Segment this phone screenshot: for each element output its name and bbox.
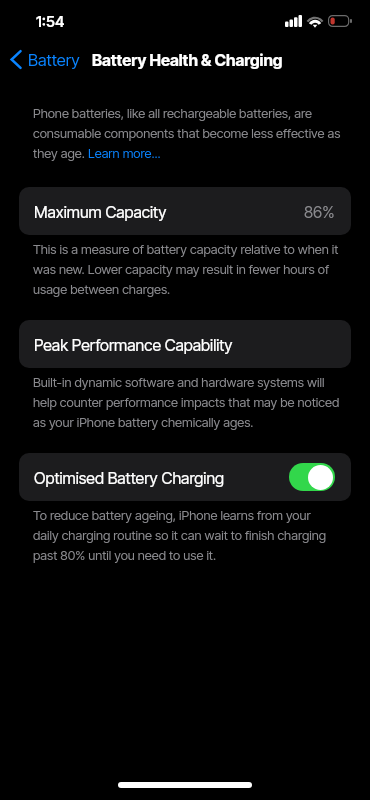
staticText: they age. xyxy=(33,142,88,162)
staticText: Maximum Capacity xyxy=(34,202,167,221)
staticText: Peak Performance Capability xyxy=(34,335,233,354)
staticText: 1:54 xyxy=(36,12,65,30)
button[interactable]: Maximum Capacity xyxy=(19,187,351,235)
button[interactable]: Optimised Battery Charging xyxy=(289,463,335,491)
button[interactable]: Peak Performance Capability xyxy=(19,320,351,368)
staticText: To reduce battery ageing, iPhone learns … xyxy=(33,504,327,564)
staticText: Phone batteries, like all rechargeable b… xyxy=(33,102,341,142)
staticText: 86% xyxy=(304,202,335,221)
button[interactable]: Battery xyxy=(0,49,88,70)
button[interactable]: Optimised Battery Charging xyxy=(19,453,351,501)
staticText: Battery xyxy=(28,50,80,70)
staticText: This is a measure of battery capacity re… xyxy=(33,238,339,298)
staticText: Optimised Battery Charging xyxy=(34,468,225,487)
staticText: Built-in dynamic software and hardware s… xyxy=(33,371,340,431)
button[interactable]: Learn more... xyxy=(88,142,161,162)
staticText: Battery Health & Charging xyxy=(92,50,283,69)
